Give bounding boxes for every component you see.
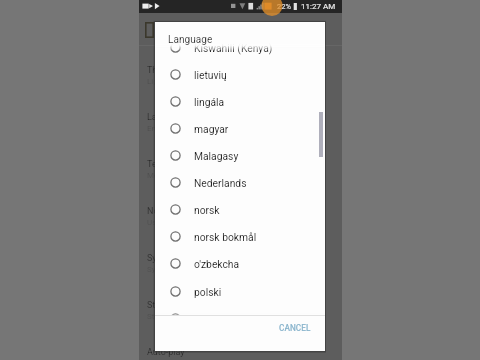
staticText: Nederlands	[194, 177, 247, 189]
other: Navigate up	[145, 22, 154, 38]
staticText: CANCEL	[279, 323, 311, 333]
button[interactable]: norsk	[155, 196, 325, 223]
button[interactable]: Text size	[139, 154, 342, 201]
button[interactable]: Notifications	[139, 201, 342, 248]
staticText: 22%	[277, 2, 291, 11]
button[interactable]: CANCEL	[273, 317, 316, 339]
staticText: Storage used 124 MB	[147, 312, 224, 321]
staticText: Text size	[147, 159, 183, 170]
button[interactable]: Nederlands	[155, 169, 325, 196]
button[interactable]: Auto-play	[139, 342, 342, 360]
staticText: Storage	[147, 300, 178, 311]
staticText: lingála	[194, 96, 225, 108]
staticText: norsk bokmål	[194, 231, 257, 243]
button[interactable]: Theme	[139, 60, 342, 107]
button[interactable]: o'zbekcha	[155, 250, 325, 277]
button[interactable]: Language	[139, 107, 342, 154]
staticText: Theme	[147, 65, 175, 76]
button[interactable]: português	[155, 305, 325, 315]
staticText: Notifications	[147, 206, 199, 217]
staticText: Auto-play	[147, 347, 185, 358]
button[interactable]: polski	[155, 278, 325, 305]
button[interactable]: lietuvių	[155, 61, 325, 88]
button[interactable]: Kiswahili (Kenya)	[155, 41, 325, 61]
staticText: o'zbekcha	[194, 258, 240, 270]
button[interactable]: Malagasy	[155, 142, 325, 169]
staticText: polski	[194, 286, 222, 298]
staticText: norsk	[194, 204, 220, 216]
staticText: magyar	[194, 123, 229, 135]
staticText: Kiswahili (Kenya)	[194, 42, 273, 54]
staticText: Sync frequency	[147, 253, 209, 264]
staticText: 11:27 AM	[301, 2, 336, 11]
button[interactable]: Sync frequency	[139, 248, 342, 295]
staticText: Use the phone setting	[147, 218, 225, 227]
staticText: Sync every 4 hours	[147, 265, 214, 274]
button[interactable]: magyar	[155, 115, 325, 142]
button[interactable]: norsk bokmål	[155, 223, 325, 250]
staticText: Language	[147, 112, 187, 123]
staticText: English	[147, 124, 173, 133]
button[interactable]: Storage	[139, 295, 342, 342]
staticText: Malagasy	[194, 150, 239, 162]
staticText: lietuvių	[194, 69, 227, 81]
staticText: Light	[147, 77, 165, 86]
button[interactable]: lingála	[155, 88, 325, 115]
staticText: Medium	[147, 171, 177, 180]
staticText: Language	[168, 34, 213, 46]
